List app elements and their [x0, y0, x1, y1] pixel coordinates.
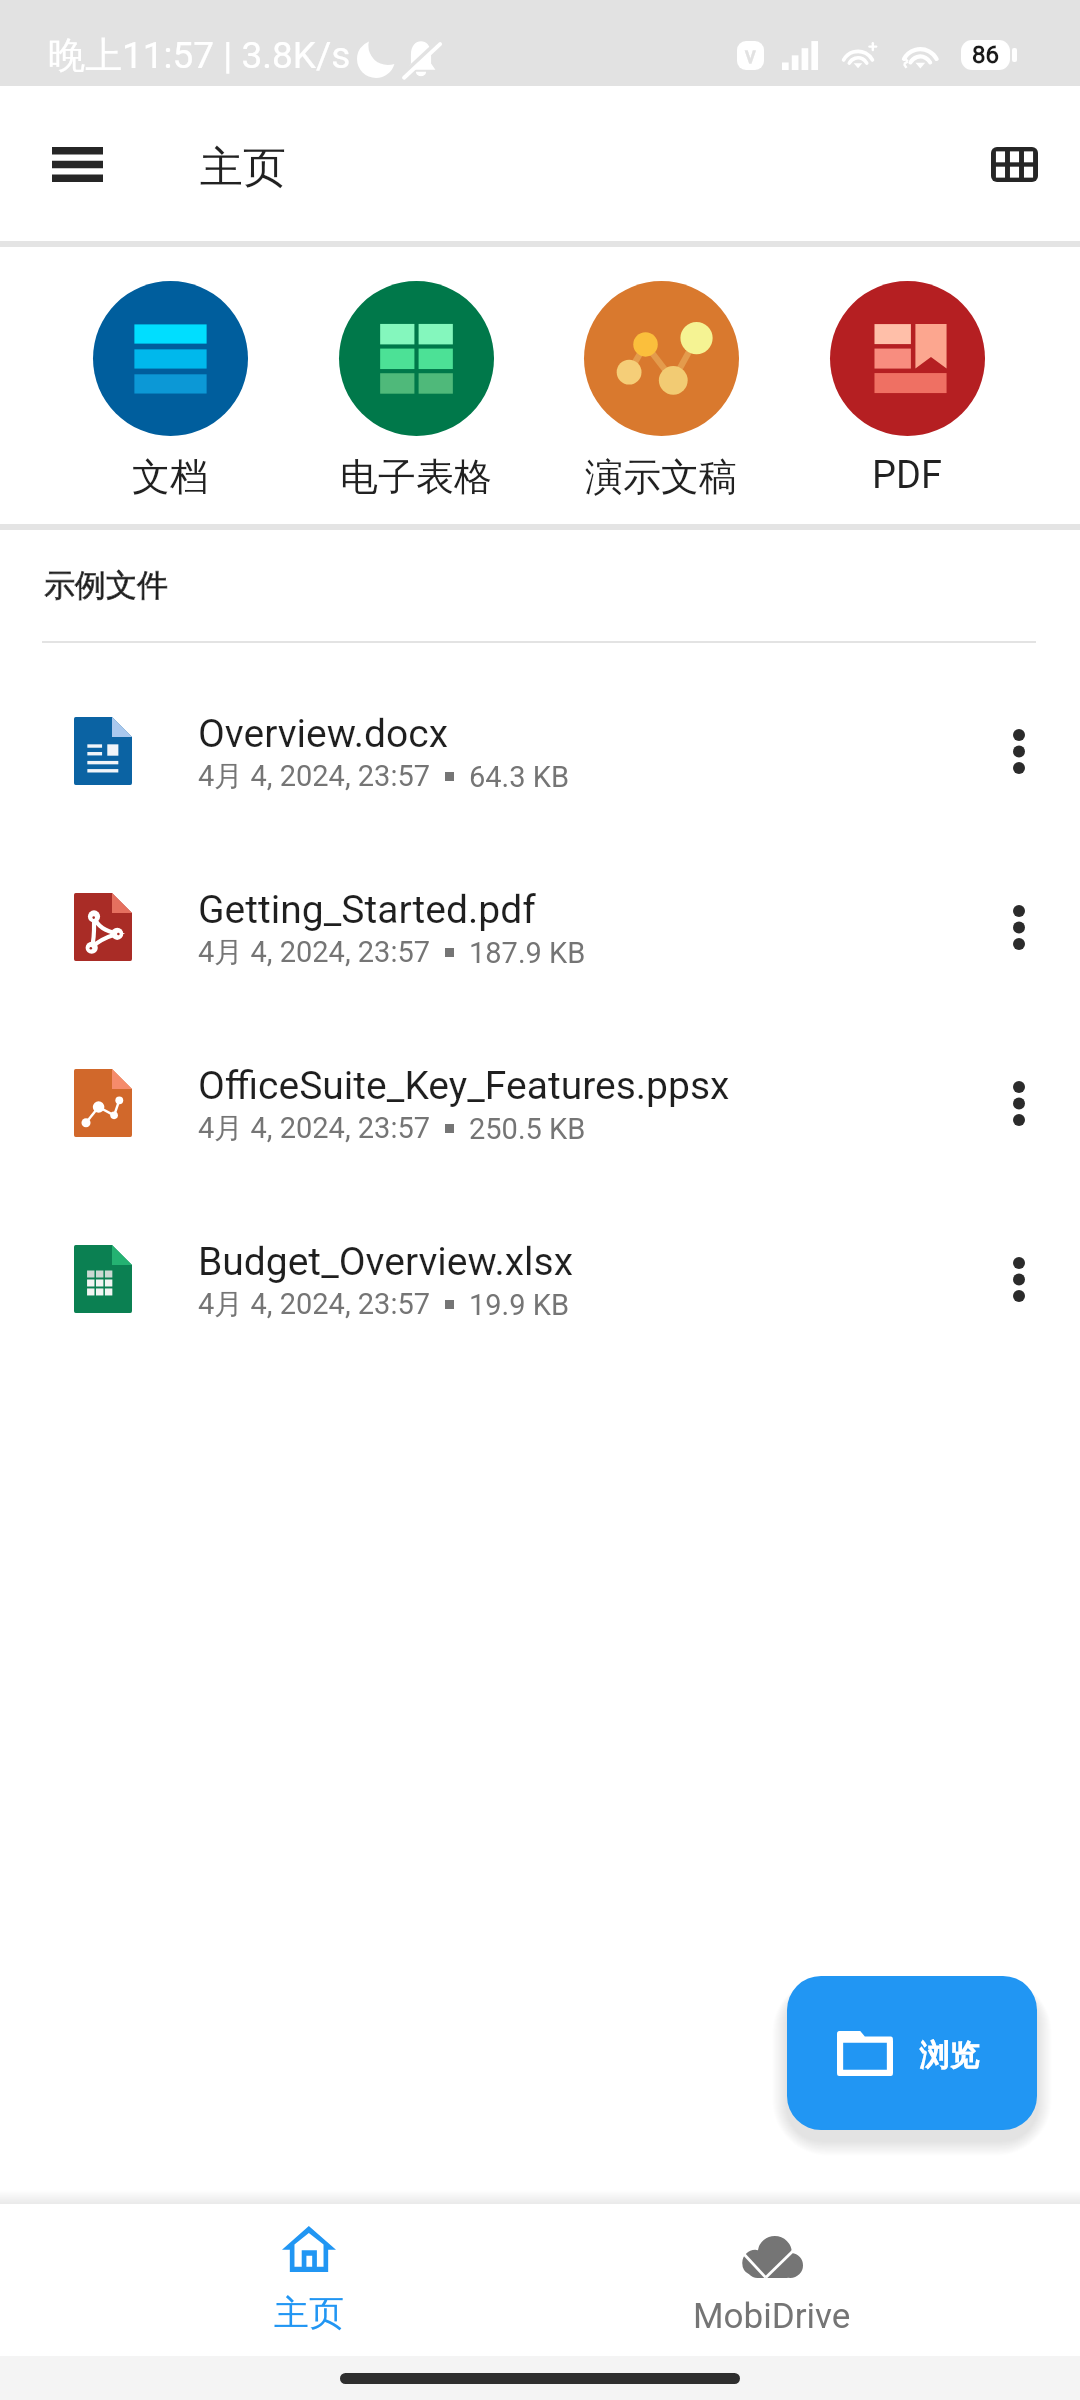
button[interactable]: MobiDrive — [652, 2198, 892, 2337]
button[interactable]: More options for OfficeSuite_Key_Feature… — [971, 1055, 1067, 1151]
staticText: 浏览 — [920, 2036, 980, 2074]
staticText: 19.9 KB — [469, 1288, 569, 1322]
staticText: 4月 4, 2024, 23:57 — [198, 758, 430, 795]
staticText: 主页 — [274, 2291, 344, 2335]
staticText: 86 — [972, 41, 999, 69]
button[interactable]: 主页 — [189, 2198, 429, 2335]
staticText: Budget_Overview.xlsx — [198, 1239, 574, 1285]
button[interactable]: 文档 — [47, 257, 293, 501]
button[interactable]: 浏览 — [787, 1976, 1037, 2130]
button[interactable]: 电子表格 — [293, 257, 539, 501]
staticText: 文档 — [132, 453, 208, 501]
staticText: Getting_Started.pdf — [198, 887, 536, 933]
button[interactable]: Switch to grid view — [964, 114, 1064, 214]
staticText: 演示文稿 — [585, 453, 737, 501]
staticText: MobiDrive — [693, 2296, 851, 2337]
button[interactable]: Overview.docx — [0, 663, 1080, 839]
button[interactable]: Open navigation menu — [27, 114, 127, 214]
button[interactable]: Getting_Started.pdf — [0, 839, 1080, 1015]
staticText: 4月 4, 2024, 23:57 — [198, 1110, 430, 1147]
staticText: 187.9 KB — [469, 936, 586, 970]
staticText: 示例文件 — [44, 566, 168, 605]
button[interactable]: More options for Getting_Started.pdf — [971, 879, 1067, 975]
staticText: 浏览 — [920, 2036, 980, 2074]
button[interactable]: 演示文稿 — [538, 257, 784, 501]
staticText: Overview.docx — [198, 711, 448, 757]
staticText: 250.5 KB — [469, 1112, 586, 1146]
button[interactable]: More options for Overview.docx — [971, 703, 1067, 799]
button[interactable]: OfficeSuite_Key_Features.ppsx — [0, 1015, 1080, 1191]
staticText: 电子表格 — [340, 453, 492, 501]
staticText: 64.3 KB — [469, 760, 569, 794]
staticText: 晚上11:57 | 3.8K/s — [48, 32, 351, 79]
staticText: 4月 4, 2024, 23:57 — [198, 1286, 430, 1323]
staticText: v — [745, 43, 756, 69]
staticText: 主页 — [200, 141, 286, 195]
staticText: OfficeSuite_Key_Features.ppsx — [198, 1063, 730, 1109]
button[interactable]: More options for Budget_Overview.xlsx — [971, 1231, 1067, 1327]
staticText: 4月 4, 2024, 23:57 — [198, 934, 430, 971]
button[interactable]: PDF — [784, 257, 1030, 498]
staticText: PDF — [872, 453, 942, 498]
staticText: 示例文件 — [44, 566, 168, 605]
button[interactable]: Budget_Overview.xlsx — [0, 1191, 1080, 1367]
